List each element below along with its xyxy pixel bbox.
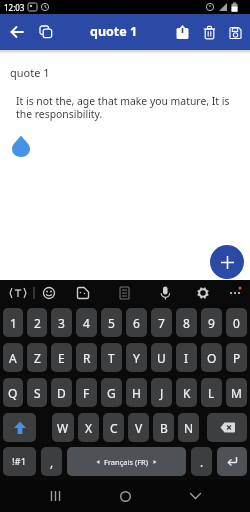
button[interactable]: C <box>103 413 124 442</box>
button[interactable] <box>152 281 178 306</box>
staticText: quote 1 <box>90 23 138 40</box>
button[interactable]: G <box>101 378 122 407</box>
button[interactable]: N <box>178 413 199 442</box>
button[interactable] <box>175 480 215 512</box>
button[interactable] <box>5 281 31 306</box>
staticText: 8 <box>183 315 190 331</box>
button[interactable]: R <box>76 343 97 372</box>
button[interactable] <box>36 281 62 306</box>
staticText: 6 <box>133 315 140 331</box>
staticText: 7 <box>158 315 165 331</box>
button[interactable] <box>210 245 244 279</box>
button[interactable]: !#1 <box>3 447 36 476</box>
staticText: J <box>160 385 164 401</box>
button[interactable]: O <box>201 343 222 372</box>
staticText: X <box>85 420 93 436</box>
staticText: L <box>208 385 215 401</box>
staticText: U <box>157 350 166 366</box>
staticText: P <box>233 350 241 366</box>
staticText: W <box>57 420 69 436</box>
button[interactable] <box>105 480 145 512</box>
staticText: quote 1 <box>10 65 50 80</box>
button[interactable]: V <box>128 413 149 442</box>
button[interactable]: L <box>201 378 222 407</box>
button[interactable]: S <box>27 378 47 407</box>
button[interactable]: Q <box>3 378 23 407</box>
staticText: 0 <box>233 315 240 331</box>
staticText: H <box>132 385 141 401</box>
staticText: Q <box>8 385 18 401</box>
button[interactable]: U <box>151 343 172 372</box>
staticText: 12:03 <box>4 2 25 13</box>
staticText: Z <box>34 350 41 366</box>
button[interactable]: 0 <box>226 308 247 337</box>
button[interactable]: F <box>76 378 97 407</box>
button[interactable]: A <box>3 343 23 372</box>
button[interactable]: D <box>51 378 72 407</box>
staticText: Français (FR) <box>104 457 149 467</box>
button[interactable]: M <box>226 378 247 407</box>
staticText: 5 <box>108 315 115 331</box>
button[interactable]: 4 <box>76 308 97 337</box>
button[interactable]: I <box>176 343 197 372</box>
button[interactable]: T <box>101 343 122 372</box>
staticText: 1 <box>10 315 17 331</box>
staticText: Y <box>133 350 140 366</box>
staticText: V <box>135 420 143 436</box>
staticText: E <box>58 350 65 366</box>
button[interactable]: K <box>176 378 197 407</box>
button[interactable]: It is not the, age that make you mature,… <box>0 80 250 121</box>
button[interactable] <box>222 281 248 306</box>
staticText: C <box>110 420 118 436</box>
button[interactable] <box>222 19 248 45</box>
button[interactable]: H <box>126 378 147 407</box>
button[interactable] <box>35 480 75 512</box>
button[interactable] <box>190 281 216 306</box>
button[interactable] <box>217 447 247 476</box>
staticText: O <box>207 350 217 366</box>
staticText: R <box>83 350 91 366</box>
button[interactable]: 1 <box>3 308 23 337</box>
button[interactable]: Y <box>126 343 147 372</box>
button[interactable] <box>207 413 247 442</box>
button[interactable]: Français (FR) <box>67 447 186 476</box>
button[interactable]: 8 <box>176 308 197 337</box>
button[interactable] <box>3 413 36 442</box>
button[interactable]: 9 <box>201 308 222 337</box>
button[interactable]: 5 <box>101 308 122 337</box>
button[interactable] <box>196 19 222 45</box>
button[interactable]: E <box>51 343 72 372</box>
staticText: , <box>50 454 54 470</box>
button[interactable]: quote 1 <box>0 54 250 80</box>
button[interactable]: 3 <box>51 308 72 337</box>
button[interactable]: X <box>78 413 99 442</box>
staticText: D <box>57 385 66 401</box>
button[interactable]: J <box>151 378 172 407</box>
staticText: 9 <box>208 315 215 331</box>
button[interactable]: B <box>153 413 174 442</box>
button[interactable] <box>170 19 196 45</box>
staticText: T <box>108 350 115 366</box>
staticText: 4 <box>83 315 90 331</box>
button[interactable]: . <box>191 447 212 476</box>
staticText: 3 <box>58 315 65 331</box>
button[interactable]: 6 <box>126 308 147 337</box>
button[interactable]: W <box>52 413 74 442</box>
staticText: N <box>184 420 194 436</box>
staticText: I <box>184 350 189 366</box>
button[interactable] <box>34 20 58 44</box>
button[interactable]: 2 <box>27 308 47 337</box>
button[interactable]: P <box>226 343 247 372</box>
button[interactable]: 7 <box>151 308 172 337</box>
button[interactable] <box>111 281 137 306</box>
button[interactable]: , <box>41 447 62 476</box>
staticText: B <box>160 420 168 436</box>
staticText: K <box>183 385 191 401</box>
staticText: M <box>231 385 242 401</box>
staticText: F <box>83 385 90 401</box>
button[interactable] <box>70 281 96 306</box>
button[interactable]: Z <box>27 343 47 372</box>
staticText: It is not the, age that make you mature,… <box>16 94 230 121</box>
button[interactable] <box>6 21 28 43</box>
staticText: A <box>9 350 17 366</box>
